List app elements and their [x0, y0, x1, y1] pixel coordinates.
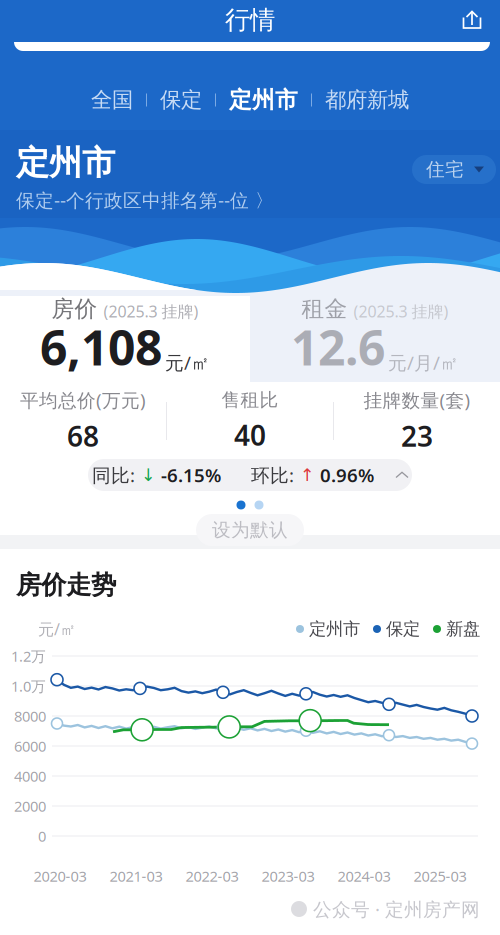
- staticText: 2022-03: [185, 866, 238, 886]
- staticText: 全国: [91, 87, 133, 113]
- staticText: 设为默认: [212, 518, 288, 541]
- button[interactable]: 保定: [160, 87, 202, 113]
- staticText: 租金: [301, 295, 347, 323]
- button[interactable]: 设为默认: [196, 514, 304, 546]
- staticText: 挂牌数量(套): [363, 387, 470, 412]
- staticText: 6000: [14, 736, 46, 756]
- staticText: 保定--个行政区中排名第--位 〉: [16, 188, 274, 212]
- staticText: 元/㎡: [38, 618, 76, 640]
- staticText: 元/㎡: [165, 350, 210, 375]
- staticText: 6,108: [40, 315, 162, 379]
- button[interactable]: 全国: [91, 87, 133, 113]
- staticText: 40: [234, 416, 266, 454]
- staticText: 房价: [51, 295, 97, 323]
- staticText: 元/月/㎡: [388, 350, 459, 375]
- staticText: 2023-03: [261, 866, 314, 886]
- staticText: 2025-03: [413, 866, 466, 886]
- staticText: 都府新城: [325, 87, 409, 113]
- staticText: 12.6: [291, 315, 385, 379]
- staticText: 售租比: [221, 388, 278, 411]
- staticText: 0: [38, 826, 46, 846]
- staticText: 8000: [14, 706, 46, 726]
- staticText: -6.15%: [156, 463, 221, 487]
- staticText: 保定: [160, 87, 202, 113]
- staticText: 2024-03: [337, 866, 390, 886]
- button[interactable]: 住宅: [412, 155, 496, 184]
- staticText: 保定: [386, 618, 420, 640]
- staticText: 定州市: [309, 618, 360, 640]
- button[interactable]: 房价: [0, 292, 250, 382]
- staticText: 平均总价(万元): [20, 387, 146, 412]
- staticText: 定州市: [229, 86, 298, 114]
- staticText: 2000: [14, 796, 46, 816]
- button[interactable]: Share: [460, 8, 484, 32]
- staticText: 2020-03: [33, 866, 86, 886]
- staticText: 行情: [225, 4, 275, 35]
- staticText: ↓: [135, 465, 156, 485]
- button[interactable]: 同比:: [88, 459, 412, 491]
- staticText: 住宅: [426, 158, 464, 181]
- staticText: ↑: [294, 465, 315, 485]
- staticText: (2025.3 挂牌): [103, 301, 198, 322]
- staticText: 定州市: [16, 142, 115, 183]
- staticText: 新盘: [446, 618, 480, 640]
- staticText: 房价走势: [16, 569, 116, 600]
- staticText: 2021-03: [109, 866, 162, 886]
- button[interactable]: 定州市: [229, 86, 298, 114]
- staticText: 0.96%: [315, 463, 374, 487]
- staticText: 1.2万: [11, 646, 46, 666]
- staticText: (2025.3 挂牌): [353, 301, 448, 322]
- staticText: 1.0万: [11, 676, 46, 696]
- staticText: 同比:: [92, 463, 135, 487]
- staticText: 23: [401, 417, 433, 454]
- staticText: 公众号 · 定州房产网: [307, 897, 480, 921]
- staticText: 4000: [14, 766, 46, 786]
- staticText: 环比:: [251, 463, 294, 487]
- staticText: 68: [67, 417, 99, 454]
- button[interactable]: 都府新城: [325, 87, 409, 113]
- button[interactable]: 租金: [250, 292, 500, 382]
